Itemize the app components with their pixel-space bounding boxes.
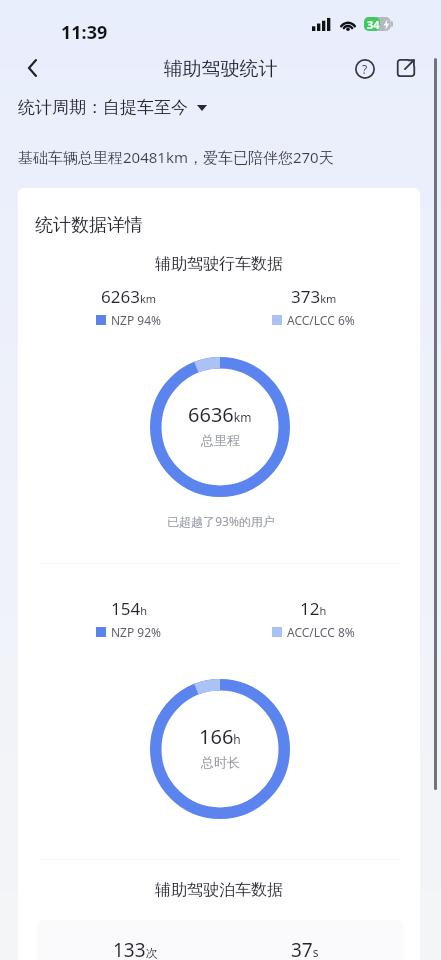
button[interactable]: Share (388, 50, 423, 85)
staticText: 辅助驾驶统计 (0, 57, 441, 81)
staticText: 6636km (188, 401, 252, 428)
button[interactable]: Back (11, 47, 53, 89)
staticText: 已超越了93%的用户 (20, 513, 420, 529)
staticText: 12h (300, 597, 327, 620)
staticText: ? (362, 61, 368, 77)
staticText: 34 (367, 17, 380, 31)
staticText: 133次 (113, 937, 158, 960)
staticText: NZP 94% (111, 312, 162, 328)
staticText: 辅助驾驶行车数据 (18, 254, 420, 274)
staticText: 166h (199, 723, 241, 750)
staticText: 6263km (101, 285, 157, 308)
staticText: NZP 92% (111, 624, 162, 640)
staticText: 154h (111, 597, 147, 620)
staticText: 自提车至今 (103, 97, 188, 118)
staticText: 37s (291, 937, 319, 960)
staticText: 总里程 (201, 432, 240, 448)
staticText: ACC/LCC 6% (287, 312, 355, 328)
staticText: 基础车辆总里程20481km，爱车已陪伴您270天 (18, 147, 334, 167)
staticText: 统计周期： (18, 97, 103, 118)
button[interactable]: Help (347, 51, 382, 86)
staticText: 总时长 (201, 754, 240, 770)
staticText: 373km (291, 285, 337, 308)
staticText: 辅助驾驶泊车数据 (18, 880, 420, 900)
staticText: 统计数据详情 (35, 214, 143, 237)
staticText: ACC/LCC 8% (287, 624, 355, 640)
staticText: 11:39 (61, 20, 108, 45)
button[interactable]: 统计周期： (18, 97, 207, 118)
